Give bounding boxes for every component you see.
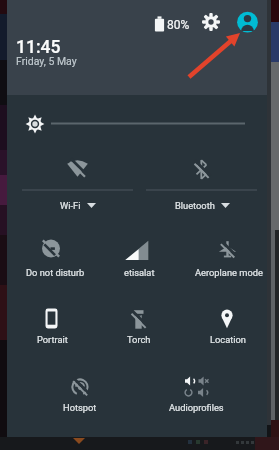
button[interactable] <box>95 296 182 350</box>
staticText: Torch <box>127 334 151 345</box>
button[interactable] <box>14 106 254 142</box>
staticText: Bluetooth <box>175 200 215 211</box>
staticText: Friday, 5 May <box>16 55 77 67</box>
staticText: 11:45 <box>16 37 61 58</box>
staticText: Hotspot <box>63 402 97 413</box>
staticText: Location <box>210 334 246 345</box>
button[interactable] <box>182 228 267 282</box>
staticText: Portrait <box>37 334 68 345</box>
staticText: Do not disturb <box>26 267 85 278</box>
button[interactable] <box>141 146 263 216</box>
button[interactable] <box>8 296 95 350</box>
staticText: etisalat <box>124 267 155 278</box>
staticText: Wi-Fi <box>60 200 81 211</box>
button[interactable] <box>182 296 267 350</box>
staticText: Audioprofiles <box>169 402 224 413</box>
button[interactable] <box>17 146 139 216</box>
staticText: Aeroplane mode <box>195 267 263 278</box>
button[interactable] <box>202 13 220 31</box>
button[interactable] <box>141 364 251 418</box>
staticText: 80% <box>167 18 190 32</box>
button[interactable] <box>8 228 95 282</box>
button[interactable] <box>237 12 258 33</box>
button[interactable] <box>25 364 135 418</box>
button[interactable] <box>95 228 182 282</box>
